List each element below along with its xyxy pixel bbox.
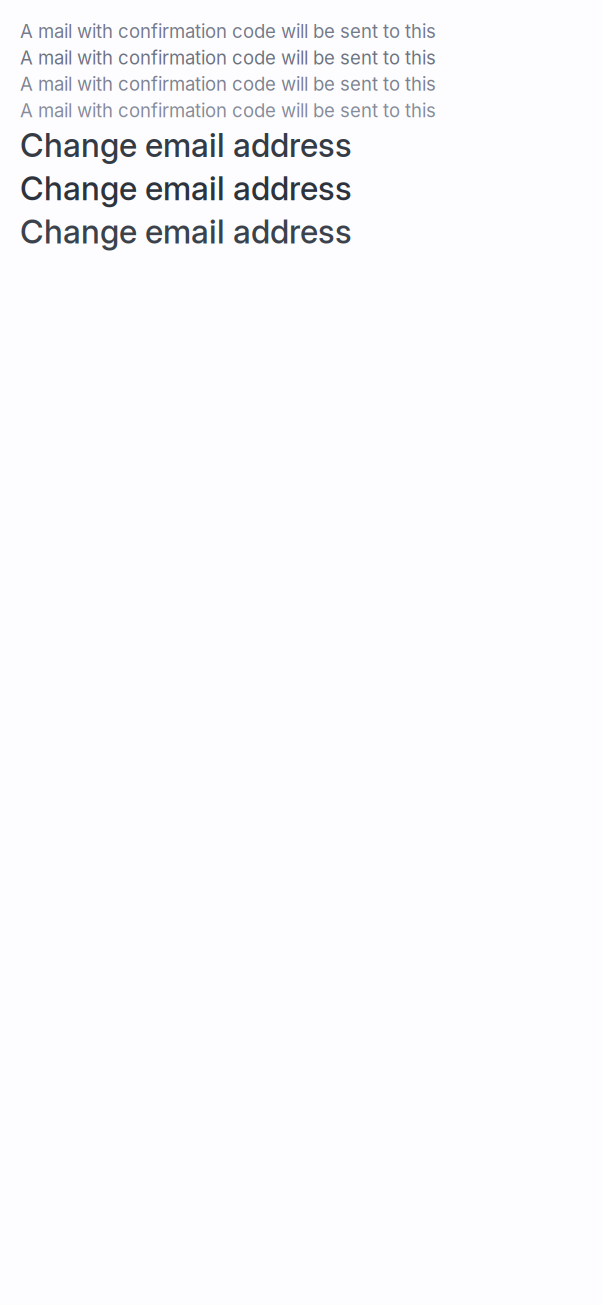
staticText: Change email address — [20, 169, 352, 208]
staticText: A mail with confirmation code will be se… — [20, 20, 436, 42]
staticText: A mail with confirmation code will be se… — [20, 73, 436, 95]
staticText: Change email address — [20, 126, 352, 165]
staticText: Change email address — [20, 212, 352, 251]
staticText: A mail with confirmation code will be se… — [20, 46, 436, 69]
staticText: A mail with confirmation code will be se… — [20, 99, 436, 122]
